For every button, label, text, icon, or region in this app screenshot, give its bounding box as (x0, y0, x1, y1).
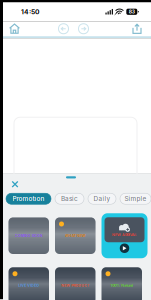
staticText: LIVE VIDEO (18, 283, 39, 288)
button[interactable]: WHAT NEW (55, 217, 95, 254)
button[interactable]: Close (9, 178, 21, 190)
staticText: Simple (124, 195, 146, 203)
staticText: WHAT NEW (65, 234, 86, 238)
button[interactable]: Simple (120, 193, 151, 204)
button[interactable]: Share (128, 21, 146, 36)
staticText: COMING SOON (15, 234, 43, 238)
button[interactable]: Forward (75, 21, 92, 36)
button[interactable]: Basic (55, 193, 84, 204)
button[interactable]: NEW PRODUCT (55, 267, 95, 300)
button[interactable]: NEW ARRIVAL (101, 213, 147, 258)
staticText: Promotion (12, 195, 44, 203)
staticText: 83 (129, 9, 135, 15)
button[interactable]: Daily (88, 193, 116, 204)
staticText: NEW PRODUCT (61, 283, 89, 288)
staticText: Basic (61, 195, 78, 203)
button[interactable]: Promotion (6, 193, 51, 204)
staticText: 14:50 (21, 8, 39, 16)
button[interactable]: 100% Natural (101, 267, 142, 300)
staticText: 100% Natural (110, 283, 133, 288)
staticText: NEW ARRIVAL (112, 233, 137, 237)
button[interactable]: Home (4, 21, 25, 36)
button[interactable]: LIVE VIDEO (8, 267, 49, 300)
button[interactable]: Back (55, 21, 72, 36)
staticText: Daily (93, 195, 110, 203)
button[interactable]: COMING SOON (8, 217, 49, 254)
